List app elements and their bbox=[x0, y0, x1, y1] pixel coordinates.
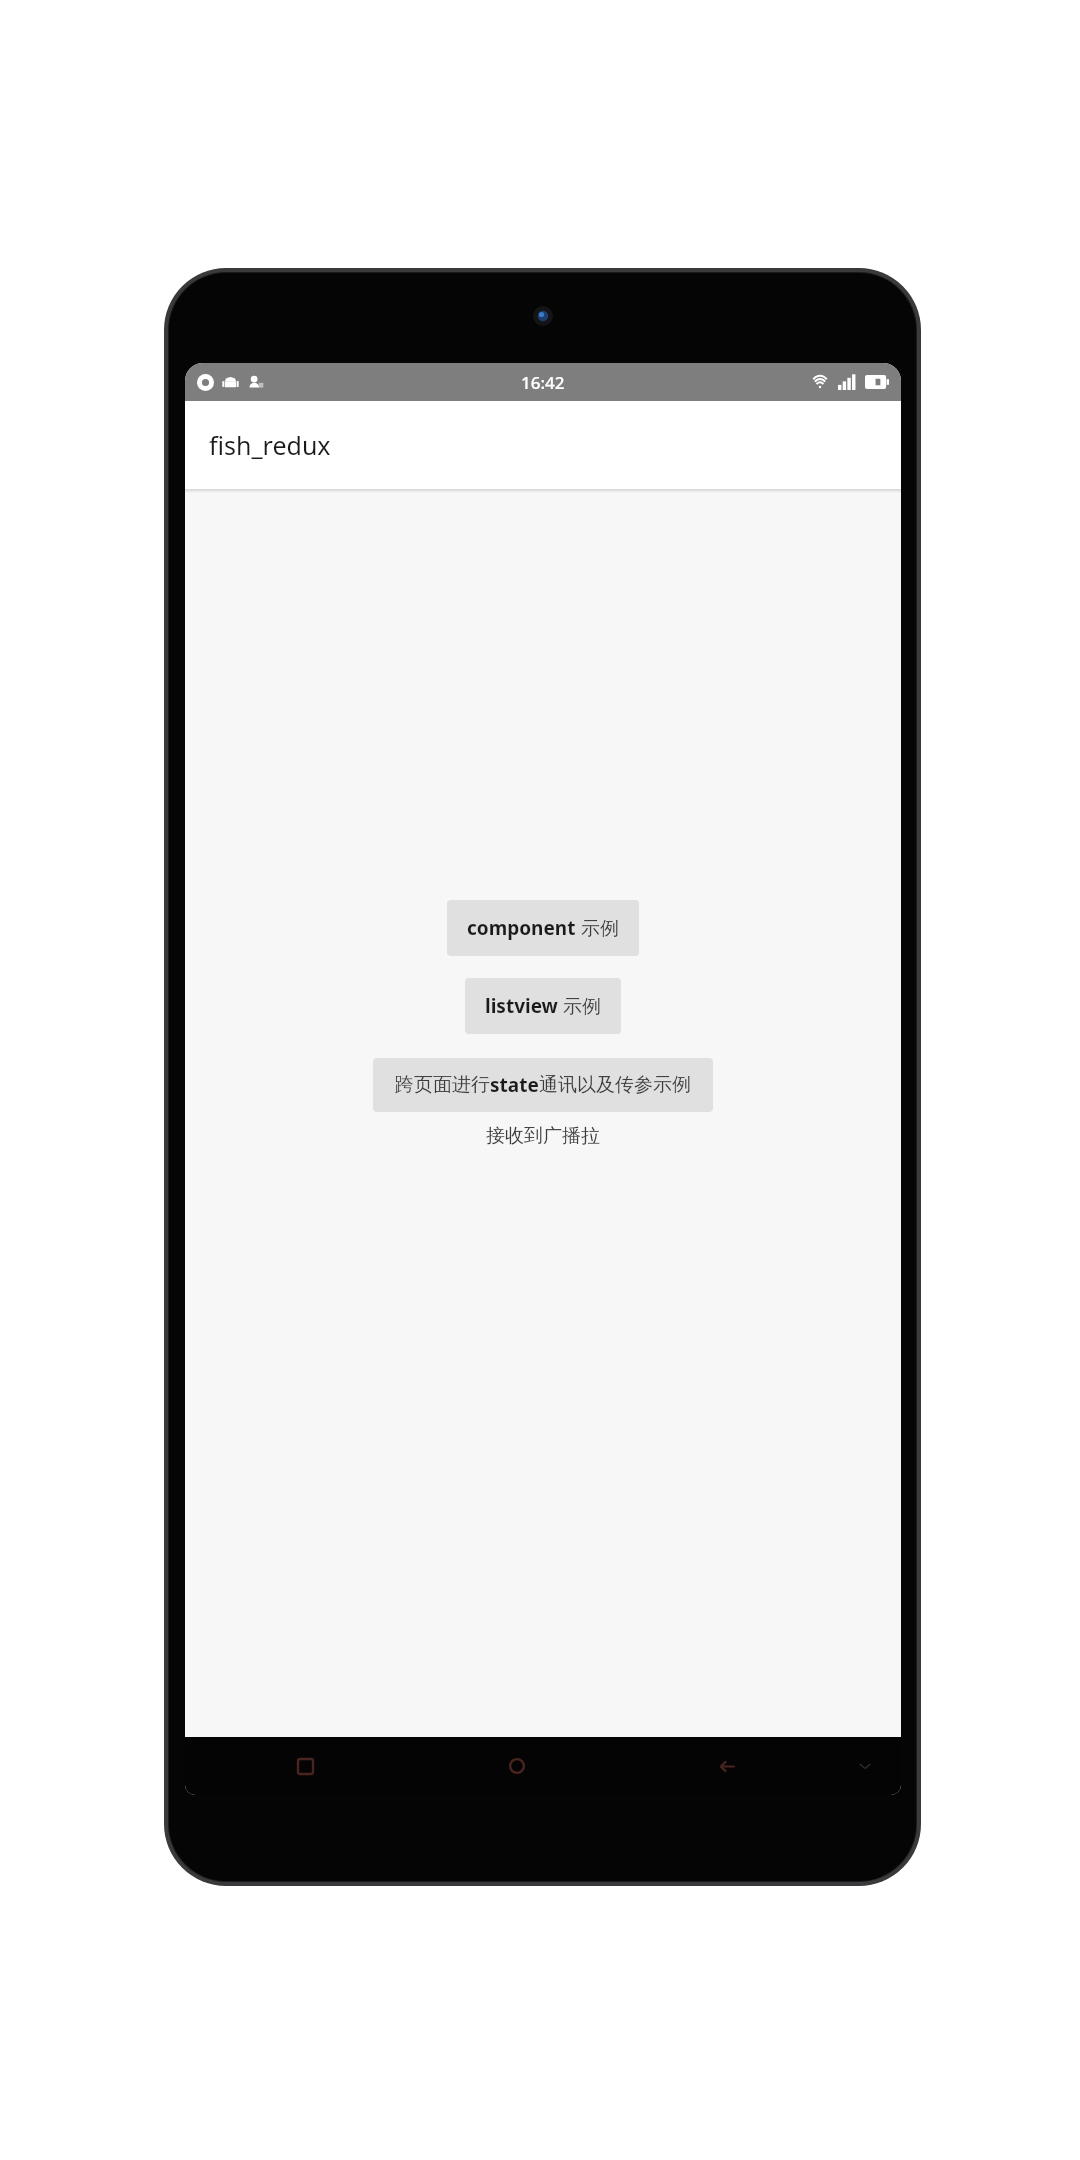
staticText: state bbox=[490, 1072, 539, 1098]
staticText: fish_redux bbox=[209, 428, 331, 462]
staticText: 示例 bbox=[576, 915, 619, 941]
staticText: component bbox=[467, 915, 576, 941]
staticText: 16:42 bbox=[521, 371, 565, 394]
button[interactable]: Hide navigation bar bbox=[833, 1737, 897, 1795]
staticText: listview bbox=[485, 993, 558, 1019]
button[interactable]: Recent apps bbox=[199, 1737, 411, 1795]
button[interactable]: listview bbox=[465, 978, 621, 1034]
staticText: 通讯以及传参示例 bbox=[539, 1073, 691, 1097]
staticText: 示例 bbox=[558, 993, 601, 1019]
staticText: 跨页面进行 bbox=[395, 1073, 490, 1097]
button[interactable]: Home bbox=[411, 1737, 622, 1795]
button[interactable]: Back bbox=[622, 1737, 833, 1795]
staticText: 接收到广播拉 bbox=[486, 1124, 600, 1148]
button[interactable]: component bbox=[447, 900, 639, 956]
button[interactable]: 跨页面进行 bbox=[373, 1058, 713, 1112]
